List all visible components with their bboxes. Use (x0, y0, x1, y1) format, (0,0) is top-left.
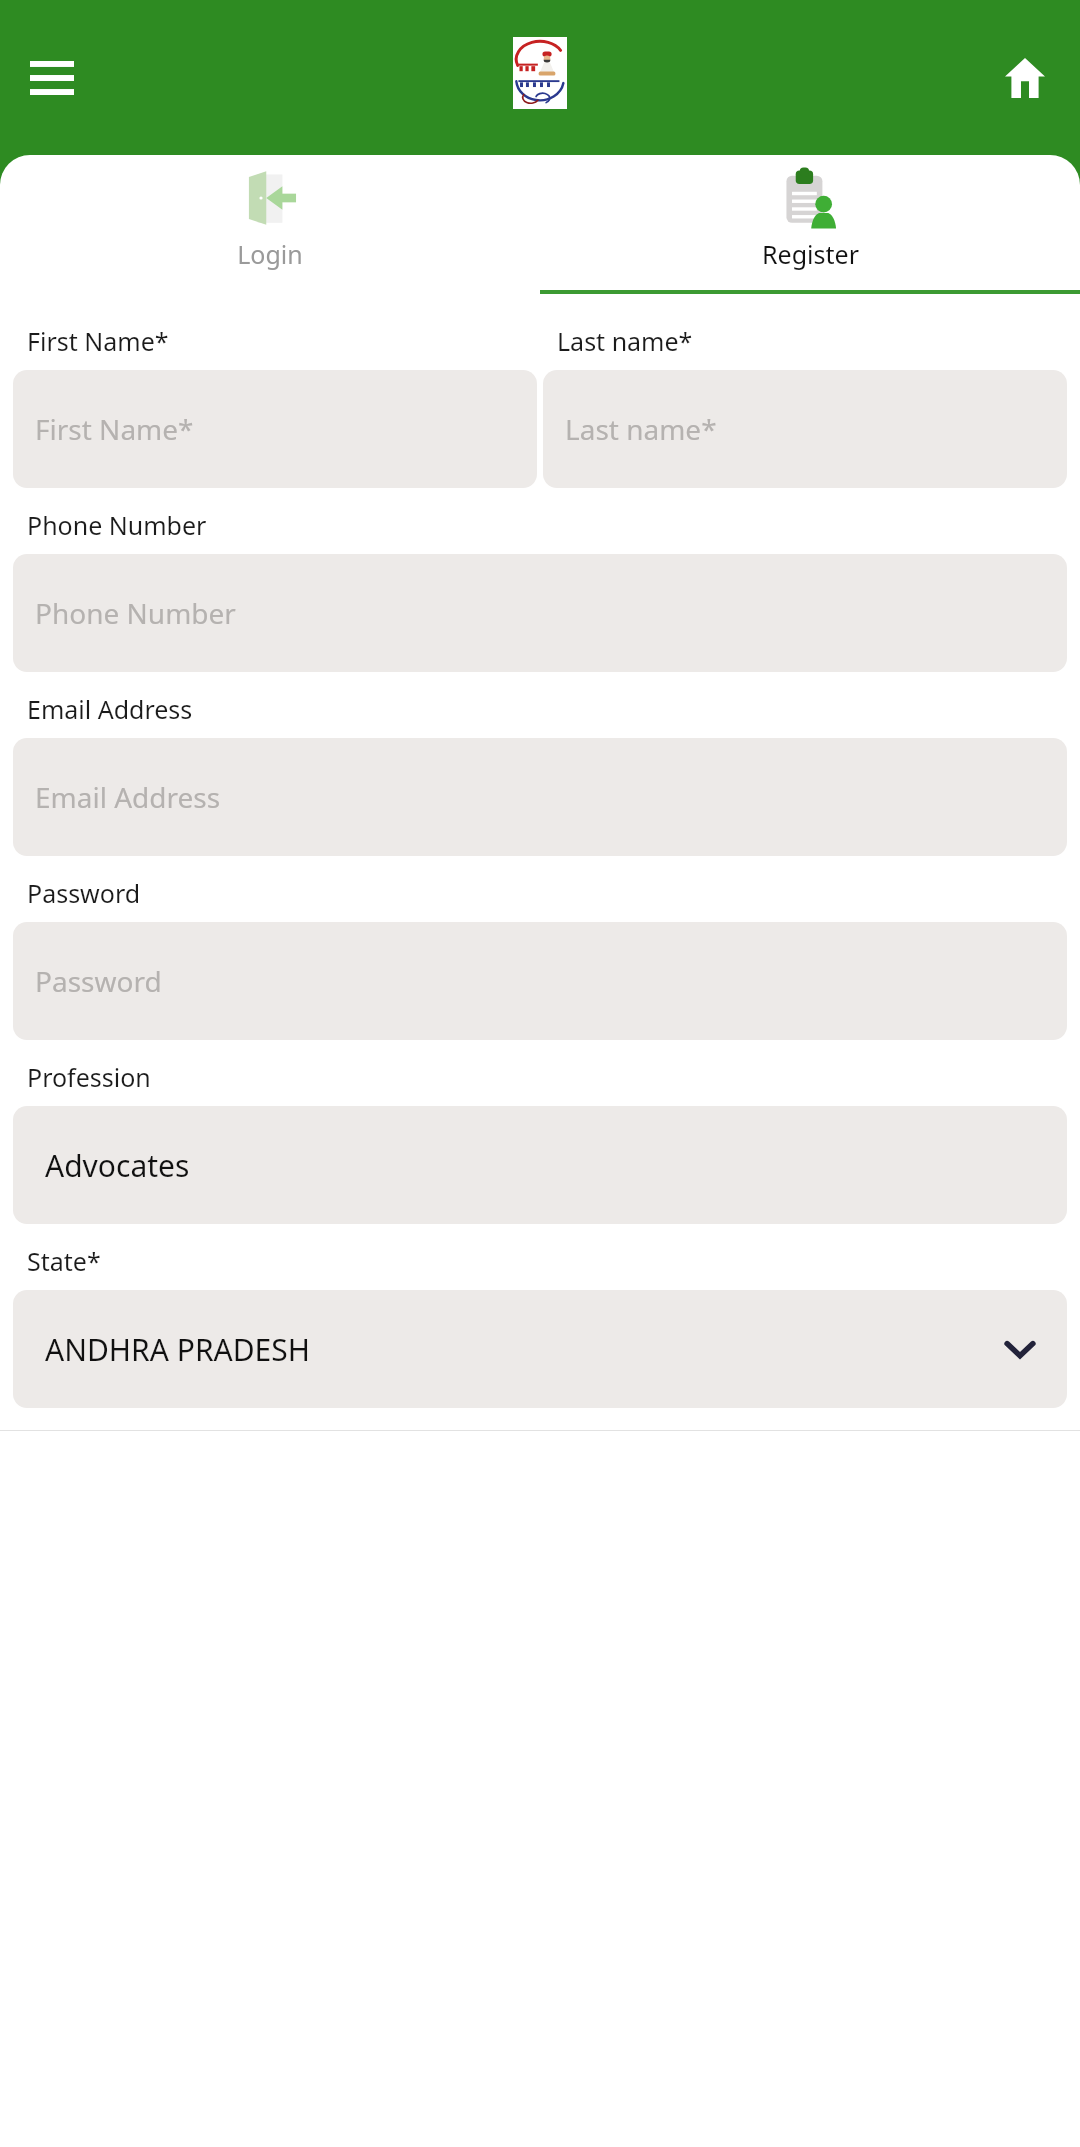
staticText: Last name* (557, 324, 693, 358)
button[interactable]: Logo (513, 37, 567, 109)
staticText: First Name* (27, 324, 169, 358)
staticText: Profession (27, 1060, 151, 1094)
staticText: Phone Number (27, 508, 207, 542)
button[interactable]: Home (994, 47, 1056, 109)
button[interactable]: Register (540, 155, 1080, 290)
staticText: Email Address (35, 778, 221, 816)
staticText: Password (27, 876, 141, 910)
staticText: Password (35, 962, 162, 1000)
button[interactable]: Menu (22, 48, 82, 108)
button[interactable]: Email Address (13, 738, 1067, 856)
staticText: Advocates (45, 1145, 190, 1186)
staticText: Register (762, 237, 859, 271)
button[interactable]: Phone Number (13, 554, 1067, 672)
staticText: ANDHRA PRADESH (45, 1329, 310, 1370)
button[interactable]: ANDHRA PRADESH (13, 1290, 1067, 1408)
staticText: First Name* (35, 410, 194, 448)
button[interactable]: First Name* (13, 370, 537, 488)
button[interactable]: Advocates (13, 1106, 1067, 1224)
staticText: Login (237, 237, 303, 271)
staticText: State* (27, 1244, 101, 1278)
button[interactable]: Login (0, 155, 540, 290)
button[interactable]: Password (13, 922, 1067, 1040)
button[interactable]: Last name* (543, 370, 1067, 488)
staticText: Last name* (565, 410, 717, 448)
staticText: Email Address (27, 692, 193, 726)
staticText: Phone Number (35, 594, 236, 632)
